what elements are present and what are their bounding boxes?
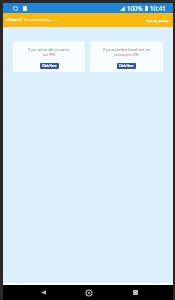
button[interactable]: Recent apps — [122, 285, 148, 300]
button[interactable]: Click Here — [40, 63, 59, 69]
staticText: If you are behind firewall and can not u… — [103, 48, 150, 57]
button[interactable]: Click Here — [117, 63, 136, 69]
staticText: is connecting ..... — [23, 17, 57, 23]
button[interactable]: Back — [30, 285, 56, 300]
button[interactable]: Home — [76, 285, 102, 300]
button[interactable]: If you are not able to connect use VPN — [13, 41, 85, 72]
staticText: Click Here — [42, 64, 57, 68]
staticText: 10:41 — [150, 4, 166, 12]
staticText: 100% — [127, 4, 143, 12]
staticText: If you are not able to connect use VPN — [28, 48, 70, 57]
button[interactable]: If you are behind firewall and can not u… — [90, 41, 163, 72]
staticText: trying proxy — [146, 18, 169, 23]
staticText: Click Here — [119, 64, 134, 68]
staticText: ePanel7 — [6, 17, 23, 23]
